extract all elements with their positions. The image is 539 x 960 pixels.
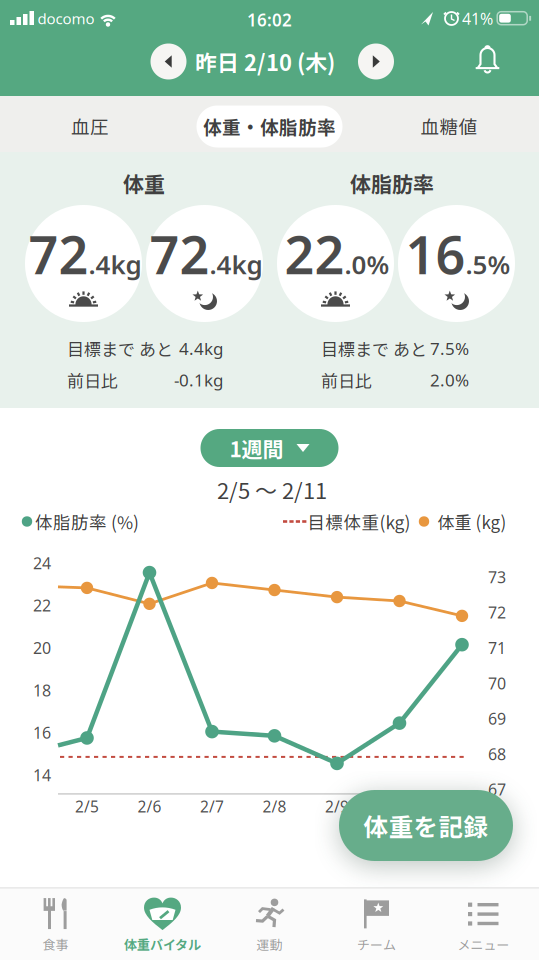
staticText: 20 xyxy=(33,637,51,659)
staticText: 体重 (kg) xyxy=(437,509,506,534)
staticText: 2.0% xyxy=(430,368,469,392)
staticText: 2/10 xyxy=(383,796,416,817)
button[interactable]: メニュー xyxy=(430,891,537,959)
button[interactable]: 1週間 xyxy=(200,429,338,467)
staticText: 69 xyxy=(488,708,506,729)
staticText: 16:02 xyxy=(247,8,292,32)
staticText: 14 xyxy=(33,764,51,786)
staticText: 目標まで あと xyxy=(321,336,427,361)
staticText: 2/6 xyxy=(137,796,161,817)
button[interactable]: 前の日 xyxy=(150,43,186,79)
staticText: 運動 xyxy=(256,935,282,953)
staticText: 体脂肪率 xyxy=(350,168,434,198)
button[interactable]: チーム xyxy=(323,891,430,959)
staticText: 2/7 xyxy=(200,796,224,817)
staticText: 18 xyxy=(33,679,51,701)
staticText: 目標まで あと xyxy=(67,336,173,361)
staticText: 70 xyxy=(488,672,506,694)
staticText: 22.0% xyxy=(284,219,389,289)
staticText: 1週間 xyxy=(229,433,283,463)
staticText: 67 xyxy=(488,778,506,800)
staticText: 2/11 xyxy=(445,796,478,817)
button[interactable]: 通知 xyxy=(473,43,501,73)
staticText: 2/5 ～ 2/11 xyxy=(217,474,327,505)
staticText: 血糖値 xyxy=(420,113,477,139)
staticText: 2/9 xyxy=(325,796,349,817)
button[interactable]: 体重バイタル xyxy=(109,891,216,959)
staticText: 体重・体脂肪率 xyxy=(203,113,336,140)
staticText: 2/8 xyxy=(262,796,286,817)
staticText: 16 xyxy=(33,722,51,743)
staticText: チーム xyxy=(357,935,396,953)
staticText: 2/5 xyxy=(75,796,99,817)
staticText: 72 xyxy=(488,601,506,623)
staticText: 71 xyxy=(488,637,506,659)
button[interactable]: 次の日 xyxy=(358,43,394,79)
staticText: 24 xyxy=(33,552,51,574)
button[interactable]: 体重・体脂肪率 xyxy=(196,105,342,147)
staticText: 昨日 2/10 (木) xyxy=(195,46,335,77)
staticText: -0.1kg xyxy=(174,368,223,392)
staticText: 体重を記録 xyxy=(363,808,488,843)
staticText: docomo xyxy=(37,8,94,29)
staticText: 68 xyxy=(488,743,506,765)
button[interactable]: 血圧 xyxy=(30,104,150,148)
staticText: 7.5% xyxy=(430,337,469,360)
staticText: 73 xyxy=(488,566,506,588)
staticText: 72.4kg xyxy=(28,219,141,289)
staticText: 体脂肪率 (%) xyxy=(35,509,139,534)
staticText: メニュー xyxy=(457,935,509,953)
button[interactable]: 運動 xyxy=(216,891,323,959)
staticText: 血圧 xyxy=(71,113,109,139)
staticText: 食事 xyxy=(42,935,68,953)
staticText: 目標体重(kg) xyxy=(307,509,410,534)
staticText: 72.4kg xyxy=(149,219,262,289)
staticText: 前日比 xyxy=(67,368,118,392)
staticText: 体重バイタル xyxy=(124,935,201,953)
staticText: 前日比 xyxy=(321,368,372,392)
staticText: 22 xyxy=(33,594,51,616)
button[interactable]: 血糖値 xyxy=(389,104,509,148)
staticText: 16.5% xyxy=(405,219,510,289)
button[interactable]: 体重を記録 xyxy=(339,790,513,861)
staticText: 体重 xyxy=(123,168,165,198)
staticText: 41% xyxy=(462,8,493,29)
button[interactable]: 食事 xyxy=(2,891,109,959)
staticText: 4.4kg xyxy=(179,337,223,360)
